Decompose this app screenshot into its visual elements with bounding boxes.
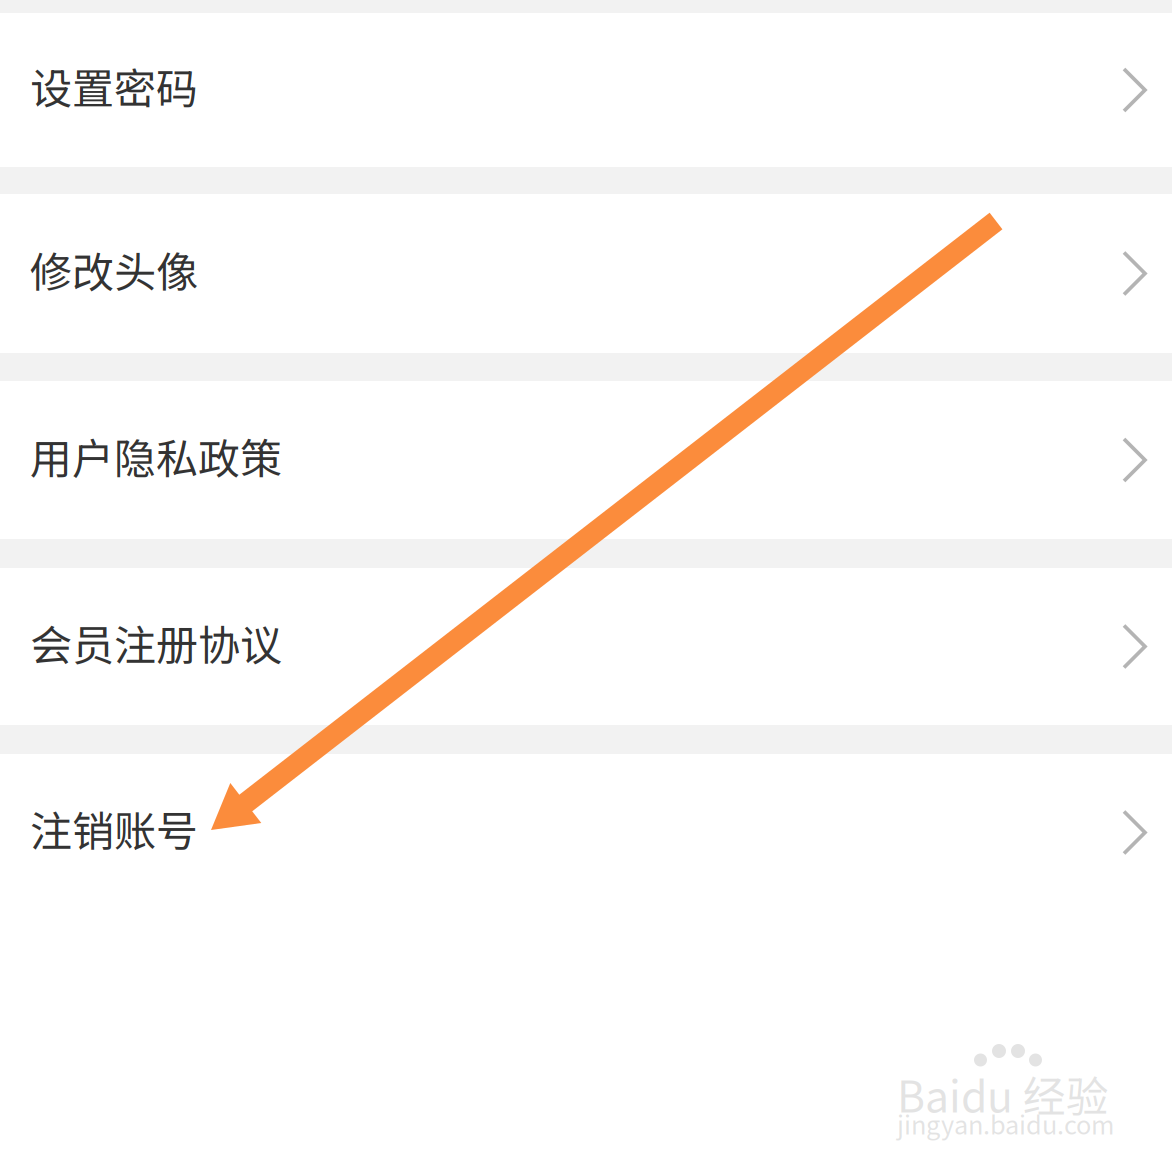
button[interactable]: 修改头像 — [0, 194, 1172, 353]
staticText: 注销账号 — [30, 798, 198, 859]
staticText: 设置密码 — [30, 56, 198, 116]
staticText: 修改头像 — [30, 239, 198, 300]
button[interactable]: 用户隐私政策 — [0, 381, 1172, 539]
button[interactable]: 会员注册协议 — [0, 568, 1172, 725]
button[interactable]: 设置密码 — [0, 13, 1172, 167]
staticText: 会员注册协议 — [30, 612, 282, 673]
staticText: jingyan.baidu.com — [897, 1105, 1114, 1142]
button[interactable]: 注销账号 — [0, 754, 1172, 911]
staticText: Baidu 经验 — [897, 1063, 1109, 1125]
staticText: 用户隐私政策 — [30, 426, 282, 486]
